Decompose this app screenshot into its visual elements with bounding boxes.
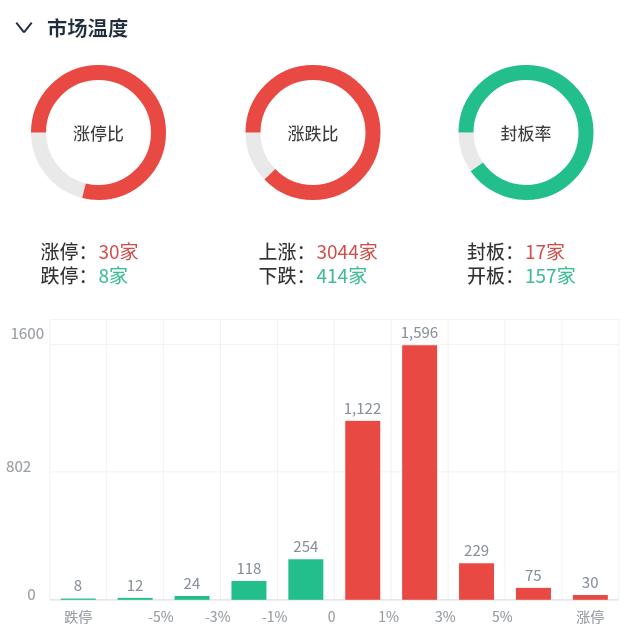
button[interactable] — [33, 238, 193, 290]
button[interactable]: 市场温度 收起 — [0, 0, 640, 56]
button[interactable]: 封板率 — [459, 65, 594, 200]
button[interactable] — [459, 238, 619, 290]
button[interactable]: 涨跌比 — [246, 65, 381, 200]
button[interactable] — [251, 238, 411, 290]
button[interactable]: 涨停比 — [31, 65, 166, 200]
button[interactable]: 涨跌幅分布图 — [0, 320, 640, 638]
